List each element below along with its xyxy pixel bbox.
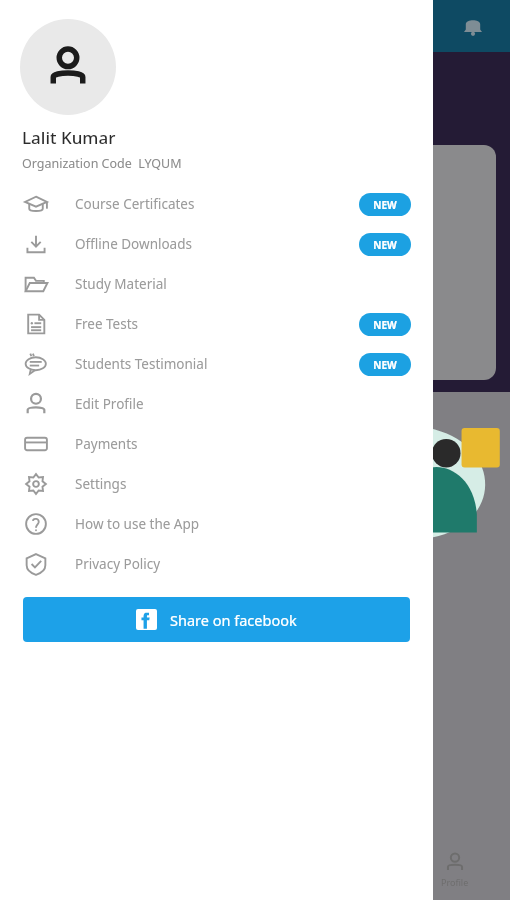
button[interactable]: [24, 318, 134, 358]
button[interactable]: Share on facebook: [23, 597, 410, 642]
staticText: NEW: [373, 318, 397, 332]
button[interactable]: Notifications: [458, 11, 488, 41]
button[interactable]: Course Certificates: [0, 184, 433, 224]
staticText: Course Certificates: [75, 195, 359, 213]
staticText: NEW: [373, 358, 397, 372]
button[interactable]: Profile photo: [20, 19, 116, 115]
staticText: Offline Downloads: [75, 235, 359, 253]
staticText: Share on facebook: [170, 610, 297, 630]
staticText: NEW: [373, 198, 397, 212]
staticText: Free Tests: [75, 315, 359, 333]
button[interactable]: How to use the App: [0, 504, 433, 544]
button[interactable]: Privacy Policy: [0, 544, 433, 584]
staticText: How to use the App: [75, 515, 359, 533]
staticText: Profile: [441, 876, 469, 888]
button[interactable]: Students Testimonial: [0, 344, 433, 384]
staticText: Settings: [75, 475, 359, 493]
staticText: Lalit Kumar: [22, 126, 116, 149]
staticText: Edit Profile: [75, 395, 359, 413]
button[interactable]: Profile: [420, 844, 490, 894]
button[interactable]: Study Material: [0, 264, 433, 304]
staticText: Payments: [75, 435, 359, 453]
staticText: Study Material: [75, 275, 359, 293]
staticText: Students Testimonial: [75, 355, 359, 373]
staticText: NEW: [373, 238, 397, 252]
staticText: Organization Code LYQUM: [22, 155, 182, 172]
button[interactable]: Settings: [0, 464, 433, 504]
button[interactable]: Free Tests: [0, 304, 433, 344]
button[interactable]: Payments: [0, 424, 433, 464]
button[interactable]: Offline Downloads: [0, 224, 433, 264]
staticText: Privacy Policy: [75, 555, 359, 573]
button[interactable]: Edit Profile: [0, 384, 433, 424]
